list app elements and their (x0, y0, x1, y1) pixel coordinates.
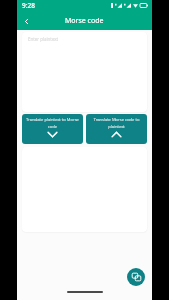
staticText: Translate plaintext to Morse code (24, 117, 81, 129)
staticText: 9:28 (22, 1, 35, 10)
button[interactable]: Copy (127, 268, 145, 286)
staticText: Enter plaintext (28, 36, 59, 42)
button[interactable]: Back (18, 13, 34, 29)
staticText: Translate Morse code to plaintext (88, 117, 145, 129)
button[interactable]: Translate plaintext to Morse code (22, 114, 83, 144)
button[interactable]: Translate Morse code to plaintext (86, 114, 147, 144)
staticText: Morse code (65, 16, 104, 26)
